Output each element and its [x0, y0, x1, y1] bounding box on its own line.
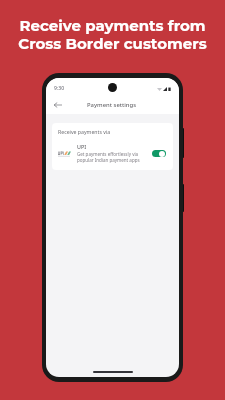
staticText: Cross Border customers: [18, 34, 207, 52]
staticText: UPI: [77, 143, 87, 150]
button[interactable]: UPI: [52, 140, 173, 165]
staticText: Payment settings: [87, 101, 137, 109]
button[interactable]: Back: [51, 98, 64, 111]
staticText: 9:30: [54, 85, 65, 92]
staticText: Receive payments via: [58, 128, 111, 135]
staticText: Get payments effortlessly via popular In…: [77, 151, 140, 163]
staticText: Receive payments from: [19, 16, 206, 34]
button[interactable]: Toggle UPI payments: [152, 150, 166, 157]
